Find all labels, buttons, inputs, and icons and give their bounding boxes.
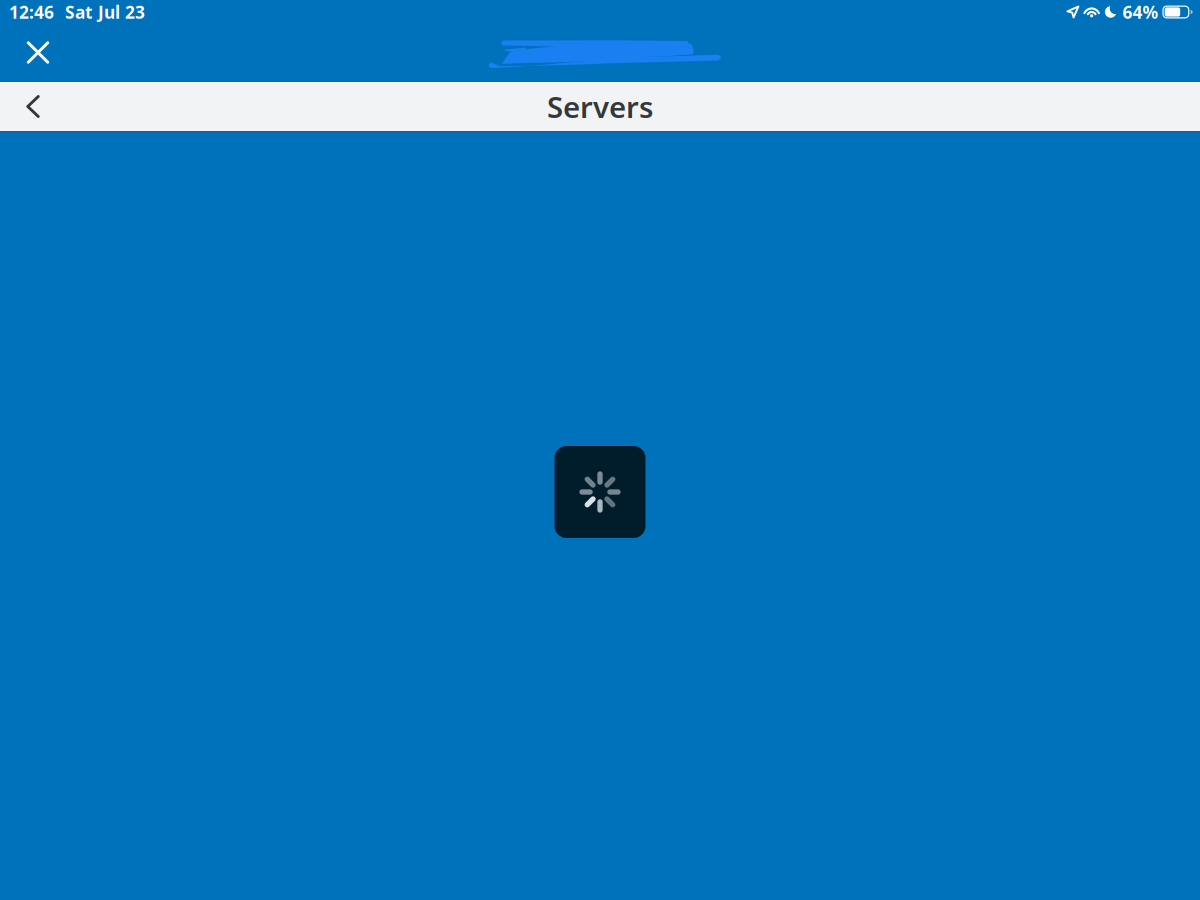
staticText: 64% [1122,0,1158,23]
staticText: Servers [547,87,653,126]
staticText: Sat Jul 23 [65,0,145,23]
button[interactable]: Back [11,82,55,131]
staticText: 12:46 [9,0,54,23]
button[interactable]: Close [15,29,61,75]
